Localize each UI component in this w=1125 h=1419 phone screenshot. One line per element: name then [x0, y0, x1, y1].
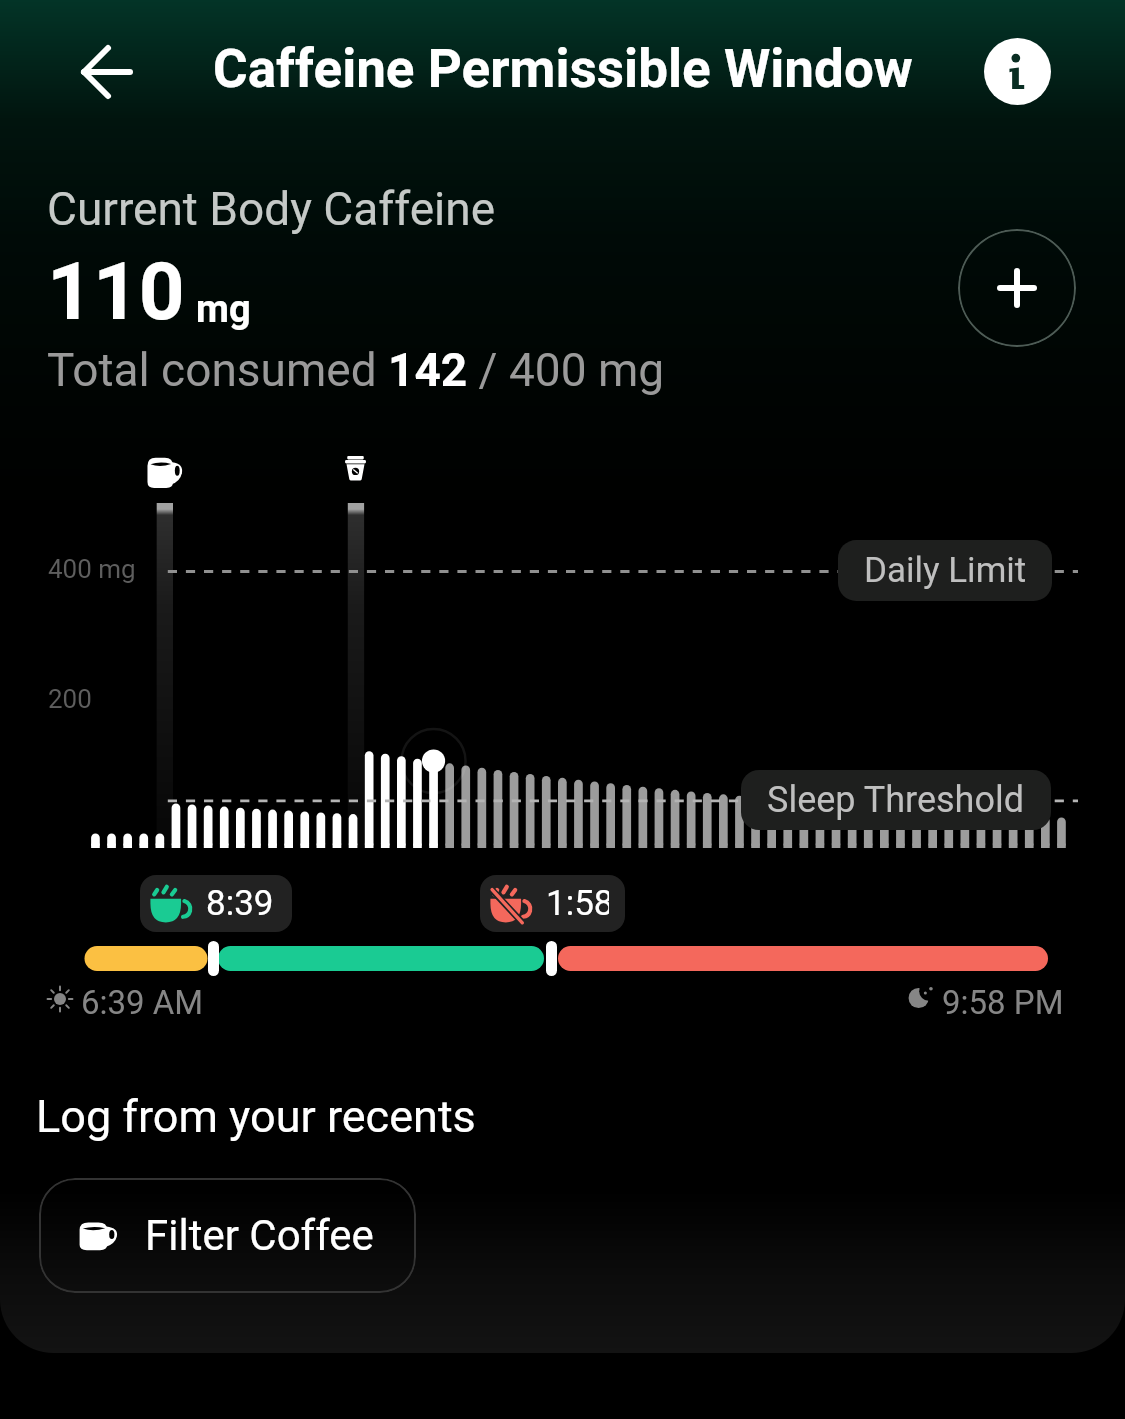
button[interactable]: 1:58	[480, 875, 625, 932]
button[interactable]: Info	[984, 38, 1051, 105]
button[interactable]: Filter Coffee	[39, 1178, 416, 1293]
staticText: Total consumed 142 / 400 mg	[47, 343, 665, 397]
button[interactable]: Back	[71, 36, 143, 108]
staticText: Sleep Threshold	[767, 779, 1025, 821]
staticText: 400 mg	[48, 554, 136, 584]
staticText: 200	[48, 684, 92, 714]
staticText: 8:39	[206, 883, 274, 924]
staticText: 110	[47, 245, 185, 339]
staticText: Log from your recents	[36, 1090, 476, 1143]
button[interactable]: 8:39	[140, 875, 292, 932]
staticText: Filter Coffee	[145, 1211, 374, 1260]
staticText: Caffeine Permissible Window	[213, 38, 913, 100]
staticText: Current Body Caffeine	[47, 182, 496, 236]
staticText: 1:58	[546, 883, 609, 924]
staticText: 6:39 AM	[81, 983, 204, 1022]
button[interactable]: Add caffeine	[958, 229, 1076, 347]
staticText: Daily Limit	[864, 550, 1027, 591]
staticText: 9:58 PM	[942, 983, 1064, 1022]
staticText: mg	[196, 287, 251, 332]
